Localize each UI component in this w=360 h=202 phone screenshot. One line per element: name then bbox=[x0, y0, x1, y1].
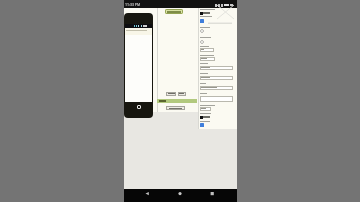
button[interactable] bbox=[173, 190, 187, 201]
button[interactable] bbox=[200, 123, 204, 127]
staticText: 11:33 PM bbox=[125, 2, 141, 7]
button[interactable] bbox=[200, 29, 204, 33]
button[interactable] bbox=[200, 76, 233, 80]
button[interactable] bbox=[200, 19, 204, 23]
button[interactable] bbox=[200, 86, 233, 90]
button[interactable] bbox=[178, 92, 186, 96]
button[interactable] bbox=[200, 57, 215, 61]
button[interactable] bbox=[166, 106, 185, 110]
button[interactable] bbox=[200, 48, 214, 52]
button[interactable] bbox=[205, 190, 219, 201]
button[interactable] bbox=[141, 190, 155, 201]
button[interactable] bbox=[200, 66, 233, 70]
button[interactable] bbox=[200, 107, 211, 111]
button[interactable] bbox=[200, 96, 233, 102]
button[interactable] bbox=[200, 40, 204, 44]
button[interactable] bbox=[124, 13, 153, 118]
button[interactable] bbox=[165, 9, 183, 14]
button[interactable] bbox=[166, 92, 176, 96]
